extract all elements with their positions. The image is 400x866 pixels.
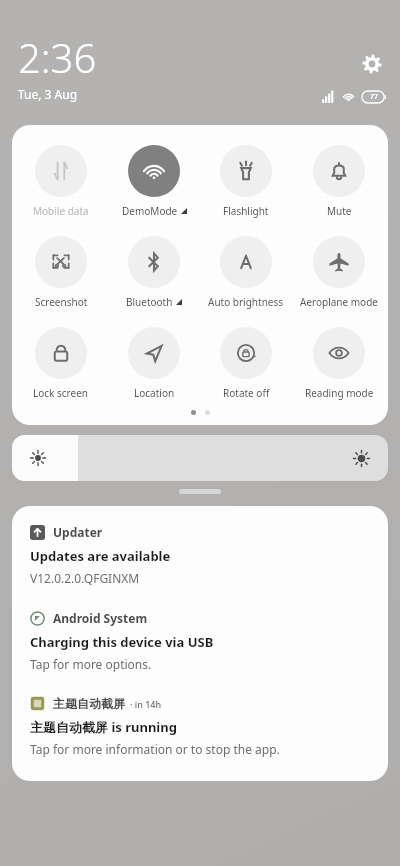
staticText: Aeroplane mode: [300, 295, 378, 309]
button[interactable]: Mobile data: [17, 143, 105, 220]
staticText: · in 14h: [130, 698, 162, 710]
staticText: Location: [134, 386, 175, 400]
staticText: Auto brightness: [208, 295, 284, 309]
button[interactable]: Settings: [358, 50, 386, 78]
staticText: Tap for more information or to stop the …: [30, 741, 280, 757]
staticText: 主题自动截屏: [53, 696, 125, 711]
staticText: V12.0.2.0.QFGINXM: [30, 570, 140, 586]
button[interactable]: Flashlight: [202, 143, 290, 220]
staticText: Rotate off: [223, 386, 270, 400]
staticText: Bluetooth: [126, 295, 173, 309]
staticText: Mobile data: [33, 204, 89, 218]
staticText: Tue, 3 Aug: [18, 86, 78, 102]
button[interactable]: Mute: [295, 143, 383, 220]
button[interactable]: 主题自动截屏: [12, 692, 388, 761]
staticText: Updates are available: [30, 547, 171, 565]
staticText: DemoMode: [122, 204, 178, 218]
staticText: Android System: [53, 610, 148, 626]
staticText: Mute: [327, 204, 352, 218]
button[interactable]: Rotate off: [202, 325, 290, 402]
staticText: Charging this device via USB: [30, 633, 214, 651]
staticText: Screenshot: [35, 295, 88, 309]
button[interactable]: Auto brightness: [202, 234, 290, 311]
button[interactable]: Reading mode: [295, 325, 383, 402]
button[interactable]: DemoMode: [110, 143, 198, 220]
staticText: Reading mode: [305, 386, 374, 400]
button[interactable]: Updater: [12, 520, 388, 590]
button[interactable]: Bluetooth: [110, 234, 198, 311]
staticText: 2:36: [18, 30, 97, 84]
staticText: 主题自动截屏 is running: [30, 718, 177, 736]
staticText: Lock screen: [33, 386, 89, 400]
button[interactable]: Location: [110, 325, 198, 402]
staticText: Flashlight: [223, 204, 269, 218]
button[interactable]: Brightness: [12, 435, 388, 481]
button[interactable]: Android System: [12, 606, 388, 676]
button[interactable]: Lock screen: [17, 325, 105, 402]
button[interactable]: Aeroplane mode: [295, 234, 383, 311]
staticText: Updater: [53, 524, 103, 540]
staticText: Tap for more options.: [30, 656, 152, 672]
staticText: 77: [370, 92, 379, 102]
button[interactable]: Screenshot: [17, 234, 105, 311]
